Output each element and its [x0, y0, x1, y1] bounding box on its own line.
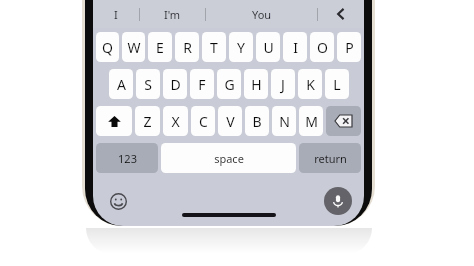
button[interactable]: V: [218, 106, 242, 136]
staticText: D: [170, 75, 181, 94]
staticText: V: [226, 112, 235, 131]
staticText: return: [314, 151, 347, 166]
button[interactable]: I'm: [140, 0, 205, 28]
staticText: M: [305, 112, 318, 131]
staticText: X: [171, 112, 180, 131]
button[interactable]: L: [325, 69, 349, 99]
button[interactable]: S: [136, 69, 160, 99]
button[interactable]: G: [217, 69, 241, 99]
button[interactable]: M: [299, 106, 323, 136]
button[interactable]: U: [256, 32, 280, 62]
staticText: U: [263, 38, 274, 57]
button[interactable]: N: [272, 106, 296, 136]
staticText: space: [214, 151, 244, 166]
staticText: R: [183, 38, 192, 57]
button[interactable]: I: [283, 32, 307, 62]
button[interactable]: D: [163, 69, 187, 99]
button[interactable]: O: [310, 32, 334, 62]
staticText: You: [252, 7, 272, 22]
button[interactable]: F: [190, 69, 214, 99]
staticText: O: [317, 38, 328, 57]
button[interactable]: R: [175, 32, 199, 62]
staticText: C: [199, 112, 208, 131]
staticText: P: [345, 38, 354, 57]
button[interactable]: E: [148, 32, 172, 62]
button[interactable]: Q: [96, 32, 119, 62]
button[interactable]: J: [271, 69, 295, 99]
button[interactable]: 123: [96, 143, 158, 173]
staticText: T: [210, 38, 218, 57]
staticText: G: [224, 75, 235, 94]
button[interactable]: X: [163, 106, 188, 136]
button[interactable]: Emoji: [107, 190, 129, 212]
button[interactable]: I: [93, 0, 139, 28]
button[interactable]: You: [206, 0, 317, 28]
staticText: N: [279, 112, 290, 131]
button[interactable]: A: [109, 69, 133, 99]
staticText: L: [333, 75, 341, 94]
staticText: K: [306, 75, 315, 94]
button[interactable]: Delete: [326, 106, 361, 136]
staticText: 123: [118, 151, 137, 166]
staticText: I: [114, 7, 118, 22]
button[interactable]: Dictation: [324, 187, 352, 215]
button[interactable]: P: [337, 32, 361, 62]
staticText: B: [252, 112, 262, 131]
button[interactable]: Z: [135, 106, 160, 136]
staticText: I: [293, 38, 298, 57]
button[interactable]: space: [161, 143, 296, 173]
button[interactable]: return: [299, 143, 361, 173]
button[interactable]: Y: [229, 32, 253, 62]
staticText: E: [156, 38, 164, 57]
button[interactable]: T: [202, 32, 226, 62]
button[interactable]: Shift: [96, 106, 132, 136]
button[interactable]: C: [191, 106, 215, 136]
button[interactable]: W: [122, 32, 145, 62]
button[interactable]: K: [298, 69, 322, 99]
staticText: J: [281, 75, 285, 94]
staticText: A: [117, 75, 126, 94]
staticText: S: [144, 75, 152, 94]
staticText: H: [251, 75, 262, 94]
button[interactable]: H: [244, 69, 268, 99]
staticText: Q: [102, 38, 113, 57]
staticText: F: [198, 75, 206, 94]
staticText: Y: [237, 38, 245, 57]
staticText: I'm: [164, 7, 181, 22]
button[interactable]: Collapse predictions: [318, 0, 364, 28]
button[interactable]: B: [245, 106, 269, 136]
staticText: Z: [143, 112, 152, 131]
staticText: W: [127, 38, 141, 57]
